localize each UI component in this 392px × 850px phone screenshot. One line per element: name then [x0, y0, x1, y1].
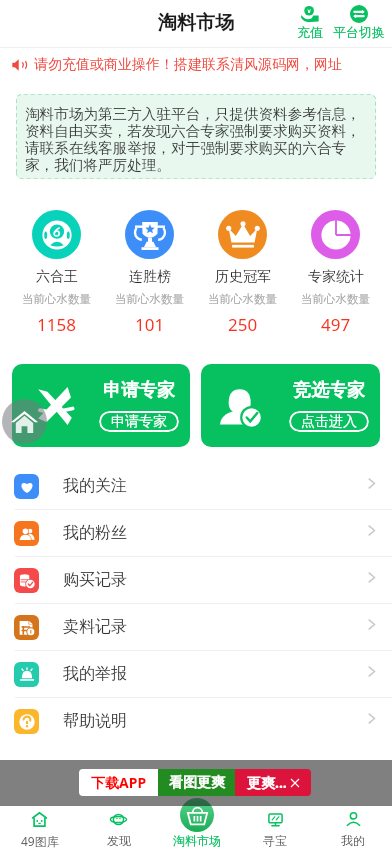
staticText: 帮助说明	[63, 711, 127, 731]
button[interactable]: 看图更爽	[158, 769, 235, 796]
staticText: 101	[135, 313, 165, 336]
staticText: 我的关注	[63, 476, 127, 496]
button[interactable]: 帮助说明	[0, 698, 392, 744]
staticText: 我的	[341, 833, 365, 848]
staticText: 竞选专家	[293, 379, 365, 402]
button[interactable]: 平台切换	[329, 5, 389, 40]
staticText: 申请专家	[111, 413, 167, 431]
button[interactable]: 充值	[290, 5, 329, 40]
button[interactable]: 历史冠军	[196, 210, 289, 336]
staticText: 申请专家	[103, 379, 175, 402]
staticText: 497	[321, 313, 351, 336]
button[interactable]: 我的	[314, 805, 392, 849]
staticText: 我的举报	[63, 664, 127, 684]
staticText: 卖料记录	[63, 617, 127, 637]
staticText: 专家统计	[308, 268, 364, 286]
button[interactable]: 六合王	[10, 210, 103, 336]
staticText: 寻宝	[263, 833, 287, 848]
staticText: 发现	[107, 833, 131, 848]
staticText: 购买记录	[63, 570, 127, 590]
button[interactable]: 竞选专家	[201, 364, 380, 447]
staticText: 请勿充值或商业操作！搭建联系清风源码网，网址www.qingf	[34, 56, 392, 74]
button[interactable]: 申请专家	[12, 364, 190, 447]
button[interactable]: 连胜榜	[103, 210, 196, 336]
button[interactable]: 49图库	[0, 805, 79, 849]
staticText: 连胜榜	[129, 268, 171, 286]
staticText: 平台切换	[333, 24, 385, 40]
button[interactable]: Home	[2, 399, 47, 444]
staticText: 淘料市场	[158, 11, 234, 35]
staticText: 看图更爽	[169, 774, 225, 792]
button[interactable]: 专家统计	[289, 210, 382, 336]
button[interactable]: 我的举报	[0, 651, 392, 697]
button[interactable]: 更爽...	[235, 769, 311, 796]
staticText: 我的粉丝	[63, 523, 127, 543]
staticText: 淘料市场为第三方入驻平台，只提供资料参考信息，资料自由买卖，若发现六合专家强制要…	[25, 105, 370, 174]
button[interactable]: 卖料记录	[0, 604, 392, 650]
staticText: 下载APP	[91, 773, 147, 792]
button[interactable]: 购买记录	[0, 557, 392, 603]
staticText: 当前心水数量	[208, 292, 277, 306]
staticText: 淘料市场	[173, 833, 221, 848]
staticText: 更爽...	[247, 773, 287, 792]
staticText: 六合王	[36, 268, 78, 286]
button[interactable]: 我的关注	[0, 463, 392, 509]
staticText: 当前心水数量	[115, 292, 184, 306]
staticText: 49图库	[21, 833, 59, 849]
staticText: 当前心水数量	[22, 292, 91, 306]
button[interactable]: 下载APP	[79, 769, 158, 796]
staticText: 历史冠军	[215, 268, 271, 286]
staticText: 250	[228, 313, 258, 336]
button[interactable]: 寻宝	[236, 805, 314, 849]
button[interactable]: 淘料市场	[158, 805, 236, 849]
staticText: 1158	[37, 313, 76, 336]
staticText: 点击进入	[301, 413, 357, 431]
staticText: 充值	[297, 24, 323, 40]
button[interactable]: 发现	[79, 805, 158, 849]
button[interactable]: 我的粉丝	[0, 510, 392, 556]
staticText: 当前心水数量	[301, 292, 370, 306]
